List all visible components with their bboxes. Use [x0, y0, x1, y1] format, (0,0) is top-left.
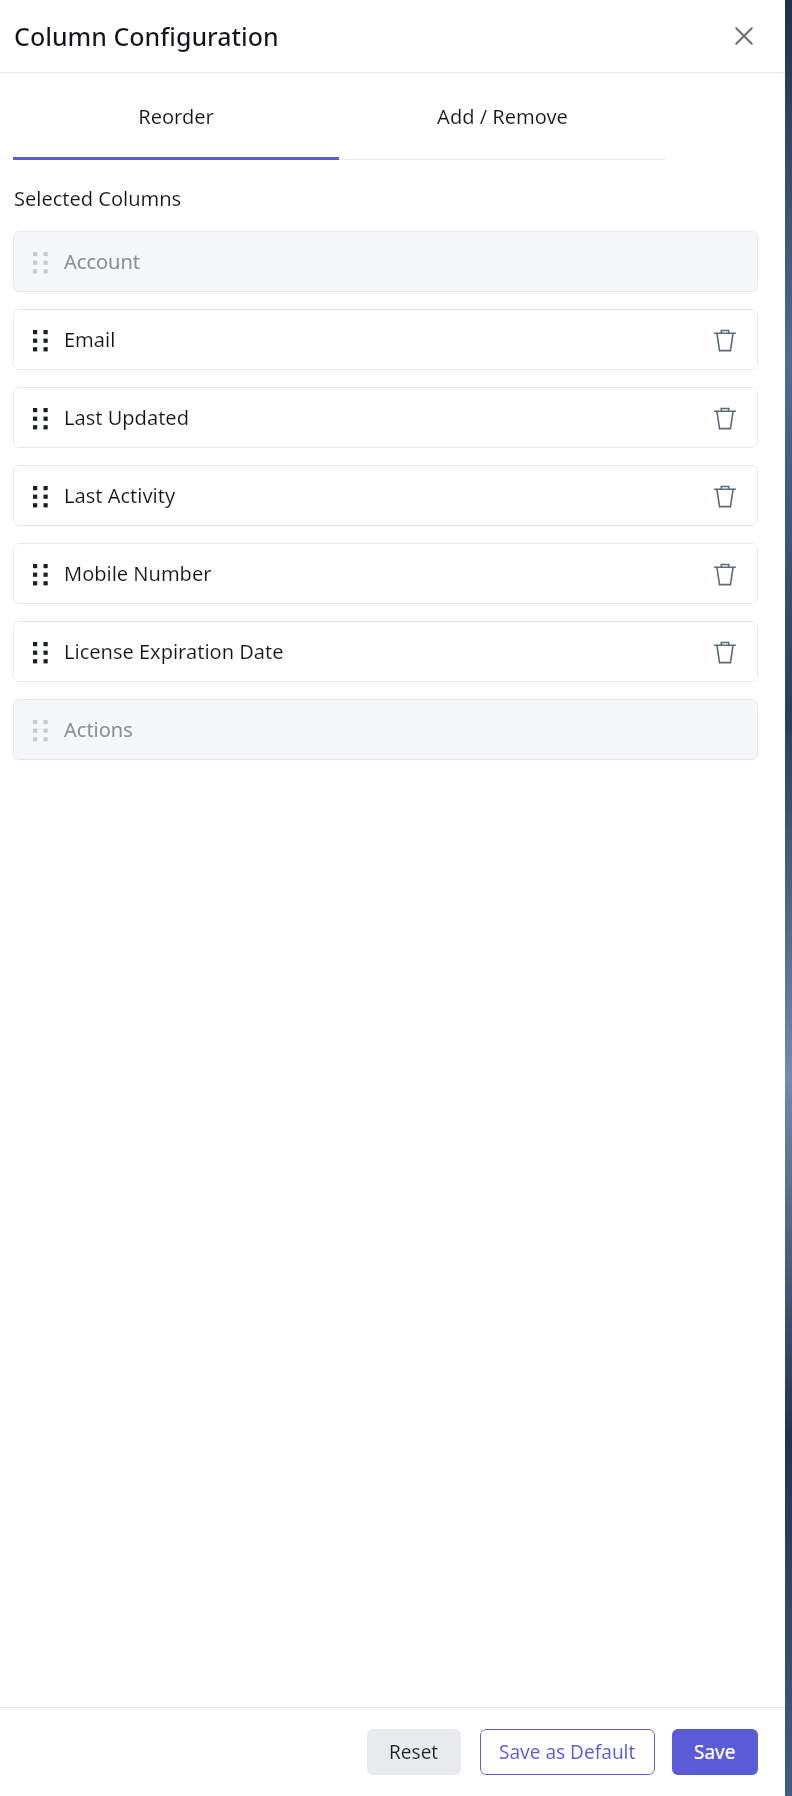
staticText: Save: [694, 1739, 736, 1765]
staticText: Last Activity: [64, 482, 176, 509]
button[interactable]: Remove Mobile Number: [708, 557, 742, 591]
staticText: License Expiration Date: [64, 638, 284, 665]
button[interactable]: Email: [13, 309, 758, 370]
button[interactable]: Remove Email: [708, 323, 742, 357]
staticText: Reset: [389, 1739, 439, 1765]
staticText: Selected Columns: [14, 185, 182, 212]
button[interactable]: Remove Last Updated: [708, 401, 742, 435]
staticText: Account: [64, 248, 141, 275]
button[interactable]: Save as Default: [480, 1729, 655, 1775]
staticText: Save as Default: [499, 1739, 636, 1765]
button[interactable]: Reset: [367, 1729, 461, 1775]
button[interactable]: Last Activity: [13, 465, 758, 526]
button[interactable]: Remove Last Activity: [708, 479, 742, 513]
button[interactable]: Add / Remove: [339, 73, 665, 160]
staticText: Email: [64, 326, 116, 353]
button[interactable]: Remove License Expiration Date: [708, 635, 742, 669]
button[interactable]: License Expiration Date: [13, 621, 758, 682]
button[interactable]: Actions: [13, 699, 758, 760]
staticText: Reorder: [138, 103, 214, 130]
button[interactable]: Last Updated: [13, 387, 758, 448]
button[interactable]: Save: [672, 1729, 758, 1775]
staticText: Mobile Number: [64, 560, 212, 587]
button[interactable]: Reorder: [13, 73, 339, 160]
staticText: Actions: [64, 716, 133, 743]
button[interactable]: Account: [13, 231, 758, 292]
button[interactable]: Mobile Number: [13, 543, 758, 604]
staticText: Last Updated: [64, 404, 189, 431]
staticText: Add / Remove: [437, 103, 568, 130]
staticText: Column Configuration: [14, 19, 279, 53]
button[interactable]: Close: [729, 21, 759, 51]
